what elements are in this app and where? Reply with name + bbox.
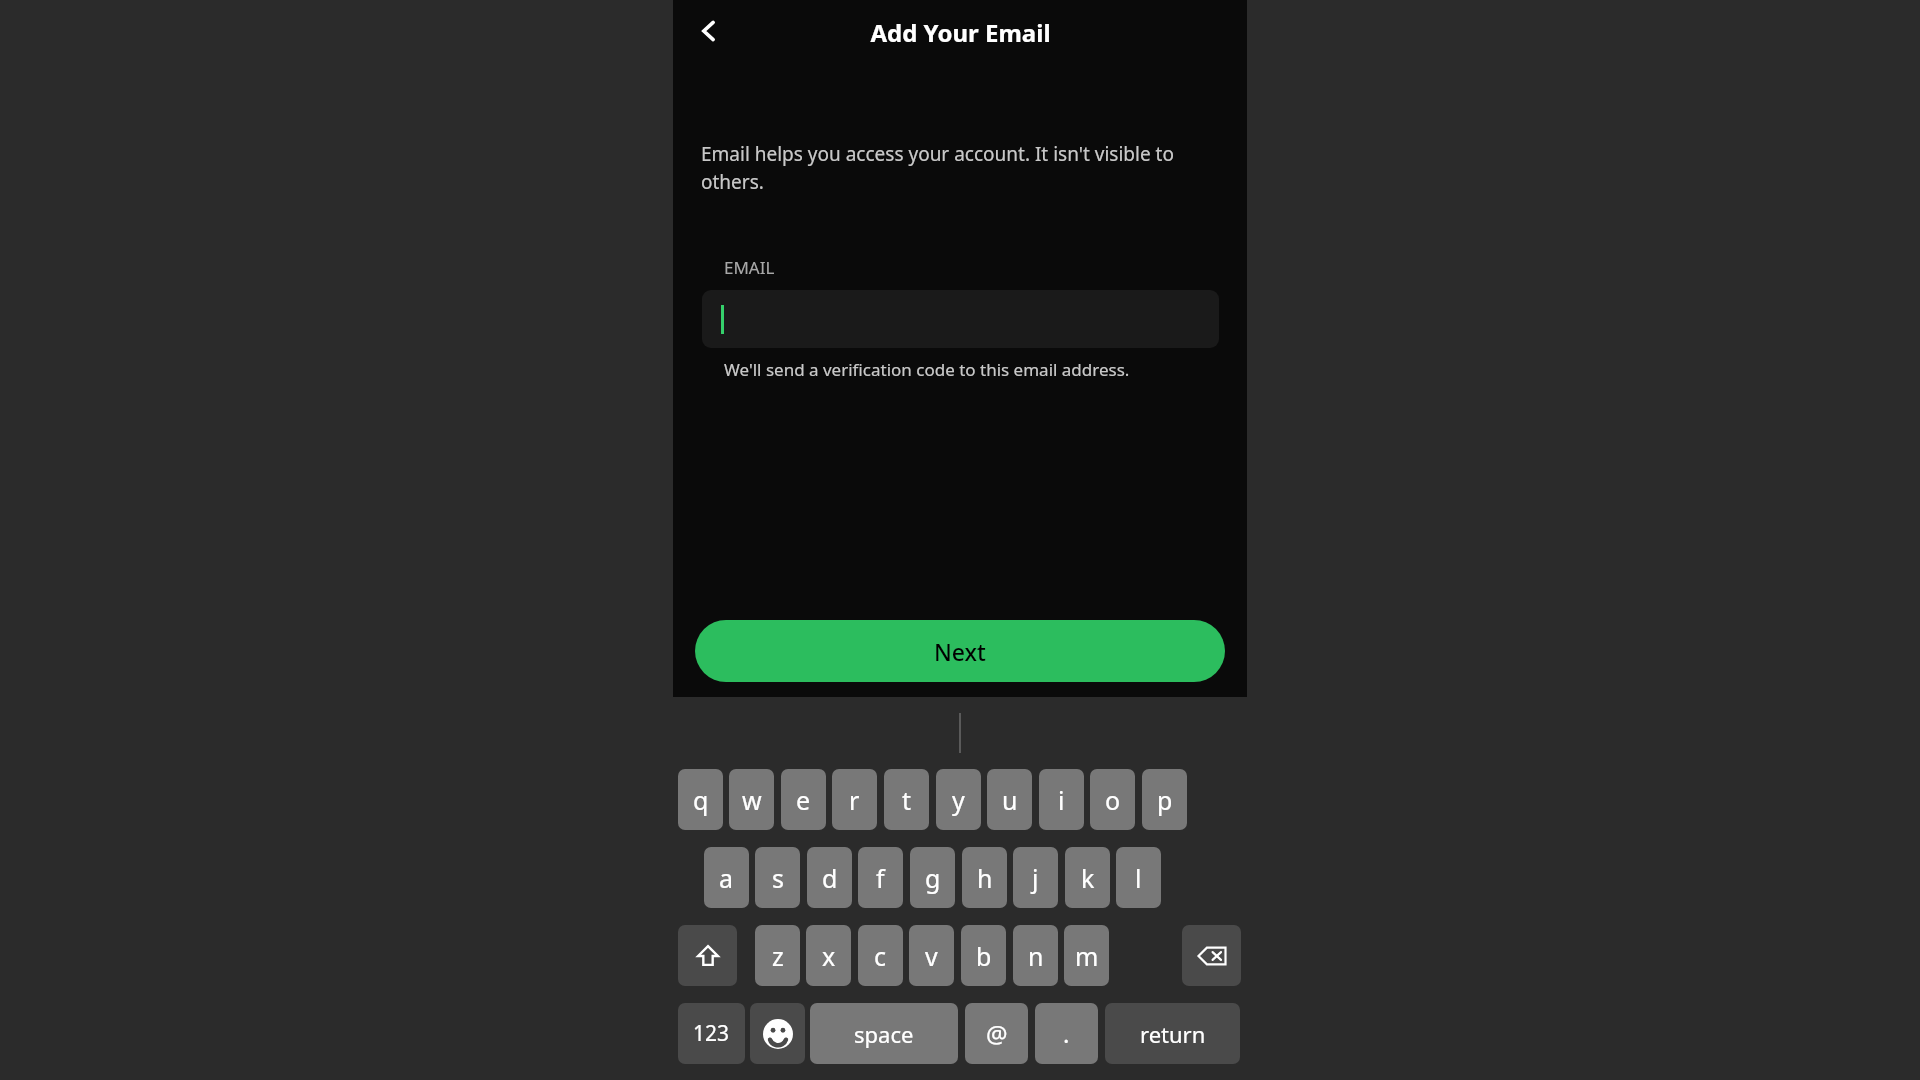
staticText: We'll send a verification code to this e… — [724, 358, 1130, 381]
button[interactable]: j — [1013, 847, 1058, 908]
staticText: w — [742, 783, 762, 817]
staticText: EMAIL — [724, 256, 775, 279]
staticText: Email helps you access your account. It … — [701, 141, 1201, 195]
staticText: return — [1140, 1019, 1206, 1049]
staticText: b — [976, 939, 992, 973]
button[interactable]: e — [781, 769, 826, 830]
button[interactable]: f — [858, 847, 903, 908]
staticText: e — [796, 783, 811, 817]
staticText: . — [1063, 1017, 1070, 1050]
button[interactable]: Next — [695, 620, 1225, 682]
staticText: g — [925, 861, 941, 895]
staticText: 123 — [693, 1019, 730, 1048]
button[interactable]: p — [1142, 769, 1187, 830]
button[interactable]: n — [1013, 925, 1058, 986]
button[interactable]: 123 — [678, 1003, 745, 1064]
button[interactable]: Back — [683, 5, 735, 57]
button[interactable]: m — [1064, 925, 1109, 986]
button[interactable]: l — [1116, 847, 1161, 908]
staticText: k — [1081, 861, 1095, 895]
staticText: f — [876, 861, 885, 895]
staticText: t — [902, 783, 912, 817]
staticText: Next — [934, 636, 986, 667]
staticText: v — [925, 939, 938, 973]
button[interactable]: k — [1065, 847, 1110, 908]
button[interactable]: space — [810, 1003, 958, 1064]
staticText: o — [1105, 783, 1121, 817]
staticText: space — [854, 1019, 914, 1049]
button[interactable]: c — [858, 925, 903, 986]
staticText: c — [874, 939, 887, 973]
staticText: a — [719, 861, 734, 895]
staticText: m — [1075, 939, 1099, 973]
staticText: r — [849, 783, 860, 817]
staticText: p — [1157, 783, 1173, 817]
button[interactable]: g — [910, 847, 955, 908]
staticText: l — [1135, 861, 1142, 895]
button[interactable]: Shift — [678, 925, 737, 986]
button[interactable]: h — [962, 847, 1007, 908]
button[interactable]: v — [909, 925, 954, 986]
button[interactable]: s — [755, 847, 800, 908]
button[interactable]: x — [806, 925, 851, 986]
button[interactable]: @ — [965, 1003, 1028, 1064]
staticText: j — [1032, 861, 1039, 895]
button[interactable]: o — [1090, 769, 1135, 830]
staticText: h — [977, 861, 993, 895]
staticText: Add Your Email — [870, 16, 1051, 49]
staticText: d — [822, 861, 838, 895]
button[interactable]: y — [936, 769, 981, 830]
button[interactable]: r — [832, 769, 877, 830]
staticText: x — [822, 939, 836, 973]
staticText: n — [1028, 939, 1044, 973]
button[interactable]: z — [755, 925, 800, 986]
staticText: @ — [986, 1017, 1008, 1050]
button[interactable]: b — [961, 925, 1006, 986]
staticText: y — [952, 783, 965, 817]
button[interactable] — [702, 290, 1219, 348]
button[interactable]: u — [987, 769, 1032, 830]
button[interactable]: q — [678, 769, 723, 830]
button[interactable]: i — [1039, 769, 1084, 830]
button[interactable]: Backspace — [1182, 925, 1241, 986]
button[interactable]: d — [807, 847, 852, 908]
button[interactable]: a — [704, 847, 749, 908]
button[interactable]: t — [884, 769, 929, 830]
staticText: q — [693, 783, 709, 817]
button[interactable]: return — [1105, 1003, 1240, 1064]
staticText: u — [1002, 783, 1018, 817]
staticText: z — [772, 939, 784, 973]
button[interactable]: . — [1035, 1003, 1098, 1064]
staticText: s — [772, 861, 784, 895]
button[interactable]: w — [729, 769, 774, 830]
button[interactable]: Emoji — [750, 1003, 805, 1064]
staticText: i — [1058, 783, 1065, 817]
